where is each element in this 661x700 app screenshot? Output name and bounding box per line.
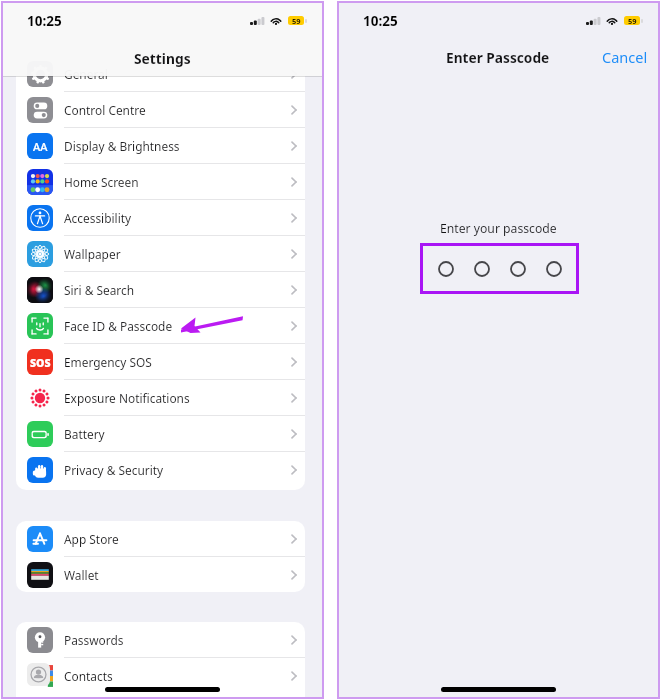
- staticText: Wallpaper: [64, 246, 121, 262]
- button[interactable]: App Store: [16, 521, 305, 557]
- staticText: Privacy & Security: [64, 462, 164, 478]
- staticText: Accessibility: [64, 210, 132, 226]
- staticText: 10:25: [27, 12, 62, 30]
- staticText: Passwords: [64, 632, 124, 648]
- button[interactable]: Privacy & Security: [16, 452, 305, 488]
- button[interactable]: Wallet: [16, 557, 305, 592]
- staticText: App Store: [64, 531, 119, 547]
- button[interactable]: Control Centre: [16, 92, 305, 128]
- staticText: Control Centre: [64, 102, 146, 118]
- button[interactable]: SOS: [16, 344, 305, 380]
- button[interactable]: Accessibility: [16, 200, 305, 236]
- staticText: Home Screen: [64, 174, 139, 190]
- staticText: Siri & Search: [64, 282, 135, 298]
- staticText: Exposure Notifications: [64, 390, 190, 406]
- button[interactable]: Passwords: [16, 622, 305, 658]
- staticText: Cancel: [602, 47, 648, 67]
- staticText: Emergency SOS: [64, 354, 152, 370]
- staticText: AA: [33, 139, 48, 154]
- staticText: Settings: [134, 49, 191, 68]
- button[interactable]: Home Screen: [16, 164, 305, 200]
- staticText: Display & Brightness: [64, 138, 180, 154]
- staticText: Contacts: [64, 668, 113, 684]
- staticText: Enter Passcode: [446, 48, 550, 67]
- button[interactable]: Face ID & Passcode: [16, 308, 305, 344]
- staticText: 59: [628, 16, 637, 25]
- staticText: Enter your passcode: [440, 220, 557, 237]
- staticText: Battery: [64, 426, 105, 442]
- button[interactable]: General: [16, 56, 305, 92]
- staticText: SOS: [30, 356, 51, 370]
- button[interactable]: AA: [16, 128, 305, 164]
- staticText: Face ID & Passcode: [64, 318, 173, 334]
- button[interactable]: Exposure Notifications: [16, 380, 305, 416]
- button[interactable]: Cancel: [600, 44, 650, 70]
- staticText: Wallet: [64, 567, 99, 583]
- button[interactable]: Wallpaper: [16, 236, 305, 272]
- staticText: 10:25: [363, 12, 398, 30]
- button[interactable]: Contacts: [16, 658, 305, 694]
- button[interactable]: Battery: [16, 416, 305, 452]
- staticText: General: [64, 66, 108, 82]
- button[interactable]: Siri & Search: [16, 272, 305, 308]
- staticText: 59: [292, 16, 301, 25]
